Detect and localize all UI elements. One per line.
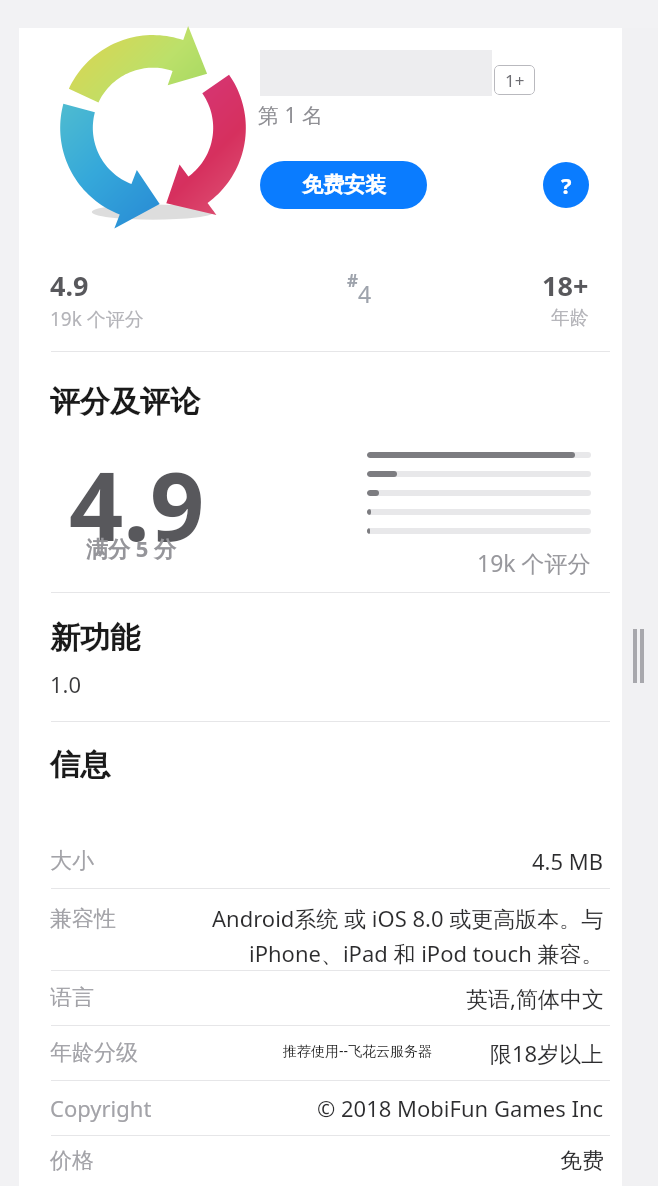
staticText: 免费安装 xyxy=(302,172,386,198)
staticText: Copyright xyxy=(50,1093,152,1123)
button[interactable]: 年龄分级 xyxy=(19,1026,622,1080)
button[interactable]: 兼容性 xyxy=(19,889,622,970)
button[interactable]: 价格 xyxy=(19,1136,622,1186)
staticText: 1.0 xyxy=(50,669,82,699)
button[interactable]: 语言 xyxy=(19,971,622,1025)
staticText: 19k 个评分 xyxy=(50,306,144,332)
staticText: 4 xyxy=(358,278,372,309)
staticText: Android系统 或 iOS 8.0 或更高版本。与 xyxy=(212,903,604,933)
staticText: 新功能 xyxy=(50,619,140,657)
staticText: 年龄 xyxy=(551,306,589,330)
button[interactable]: 免费安装 xyxy=(260,161,427,209)
button[interactable]: Copyright xyxy=(19,1081,622,1135)
staticText: 年龄分级 xyxy=(50,1039,138,1067)
staticText: 兼容性 xyxy=(50,905,116,933)
button[interactable]: 1+ xyxy=(494,65,535,95)
staticText: iPhone、iPad 和 iPod touch 兼容。 xyxy=(249,938,604,968)
staticText: 4.9 xyxy=(50,267,89,304)
staticText: 第 1 名 xyxy=(258,101,323,130)
staticText: 评分及评论 xyxy=(50,383,200,421)
staticText: 推荐使用--飞花云服务器 xyxy=(283,1041,433,1060)
staticText: # xyxy=(347,269,358,292)
staticText: 4.9 xyxy=(69,439,205,568)
staticText: 19k 个评分 xyxy=(477,547,591,578)
staticText: 1+ xyxy=(505,69,525,92)
staticText: ? xyxy=(561,170,572,200)
staticText: © 2018 MobiFun Games Inc xyxy=(317,1093,604,1123)
staticText: 信息 xyxy=(50,746,110,784)
staticText: 满分 5 分 xyxy=(86,533,177,563)
staticText: 语言 xyxy=(50,984,94,1012)
staticText: 大小 xyxy=(50,847,94,875)
staticText: 4.5 MB xyxy=(532,846,604,876)
staticText: 免费 xyxy=(560,1147,604,1175)
button[interactable]: 帮助 xyxy=(543,162,589,208)
button[interactable]: 大小 xyxy=(19,834,622,888)
staticText: 18+ xyxy=(542,267,589,304)
staticText: 价格 xyxy=(50,1147,94,1175)
staticText: 英语,简体中文 xyxy=(466,983,604,1013)
staticText: 限18岁以上 xyxy=(490,1038,604,1068)
